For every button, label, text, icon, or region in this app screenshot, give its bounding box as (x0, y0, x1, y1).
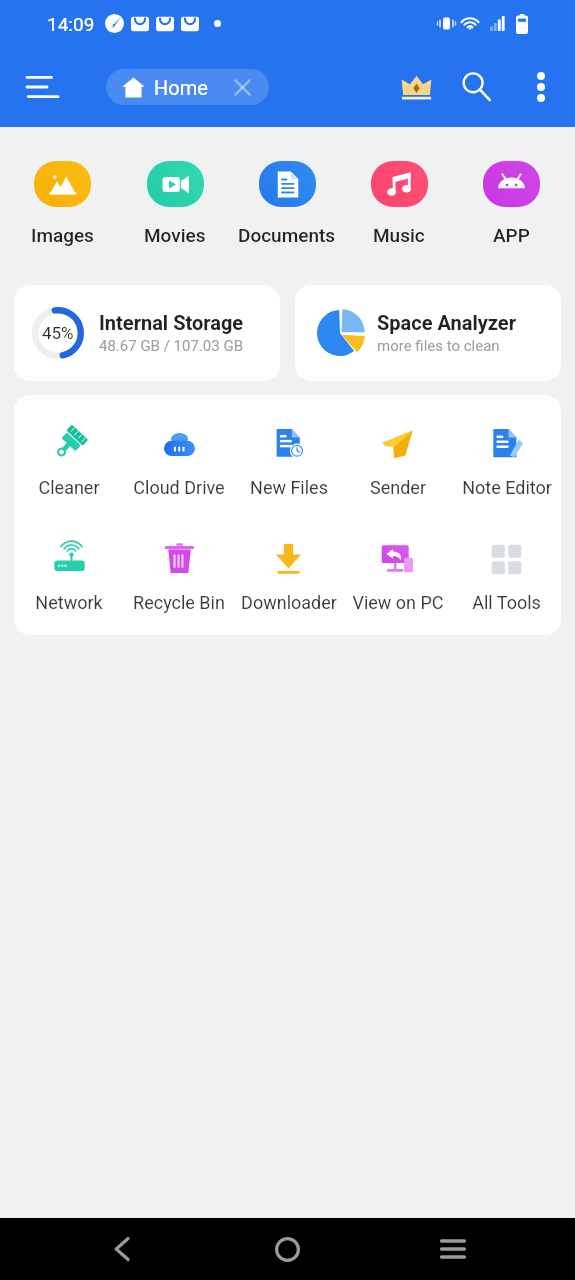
button[interactable]: Home (204, 1218, 370, 1280)
staticText: 14:09 (47, 13, 95, 35)
staticText: New Files (250, 477, 328, 498)
staticText: 45% (42, 323, 74, 343)
button[interactable]: Search (456, 66, 498, 108)
staticText: All Tools (472, 592, 541, 613)
staticText: Space Analyzer (377, 311, 516, 334)
staticText: Images (31, 224, 94, 246)
staticText: more files to clean (377, 337, 500, 355)
staticText: Movies (144, 224, 206, 246)
staticText: Cleaner (38, 477, 100, 498)
button[interactable]: Menu (23, 68, 61, 106)
button[interactable]: Recents (370, 1218, 536, 1280)
button[interactable]: Home (106, 69, 269, 105)
button[interactable]: Network (14, 542, 124, 613)
staticText: Cloud Drive (133, 477, 225, 498)
button[interactable]: More options (522, 68, 560, 106)
button[interactable]: Back (39, 1218, 204, 1280)
staticText: 48.67 GB / 107.03 GB (99, 337, 243, 355)
button[interactable]: Cleaner (14, 427, 124, 498)
button[interactable]: Movies (119, 161, 231, 246)
button[interactable]: APP (455, 161, 567, 246)
button[interactable]: Note Editor (452, 427, 561, 498)
button[interactable]: View on PC (343, 542, 452, 613)
button[interactable]: Cloud Drive (124, 427, 234, 498)
staticText: APP (493, 224, 530, 246)
staticText: Documents (238, 224, 336, 246)
staticText: Sender (370, 477, 426, 498)
button[interactable]: Space Analyzer (295, 285, 561, 381)
staticText: Note Editor (462, 477, 552, 498)
staticText: Recycle Bin (133, 592, 225, 613)
staticText: Home (154, 76, 208, 99)
staticText: Internal Storage (99, 311, 244, 334)
staticText: Music (373, 224, 425, 246)
button[interactable]: Sender (343, 427, 452, 498)
staticText: Network (35, 592, 103, 613)
button[interactable]: 45% (14, 285, 280, 381)
button[interactable]: Images (6, 161, 119, 246)
button[interactable]: New Files (234, 427, 343, 498)
button[interactable]: Documents (231, 161, 343, 246)
button[interactable]: Premium (395, 66, 437, 108)
button[interactable]: Downloader (234, 542, 343, 613)
button[interactable]: All Tools (452, 542, 561, 613)
staticText: View on PC (352, 592, 444, 613)
button[interactable]: Recycle Bin (124, 542, 234, 613)
staticText: Downloader (241, 592, 337, 613)
button[interactable]: Music (343, 161, 455, 246)
